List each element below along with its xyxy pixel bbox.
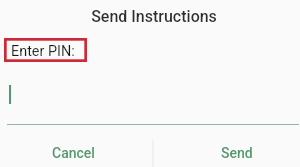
button[interactable]: PIN entry field [7, 68, 299, 125]
staticText: Enter PIN: [11, 43, 75, 60]
staticText: Cancel [52, 145, 95, 161]
staticText: Send [221, 145, 253, 161]
button[interactable]: Send [186, 138, 288, 167]
button[interactable]: Cancel [22, 138, 124, 167]
staticText: Send Instructions [4, 7, 300, 26]
